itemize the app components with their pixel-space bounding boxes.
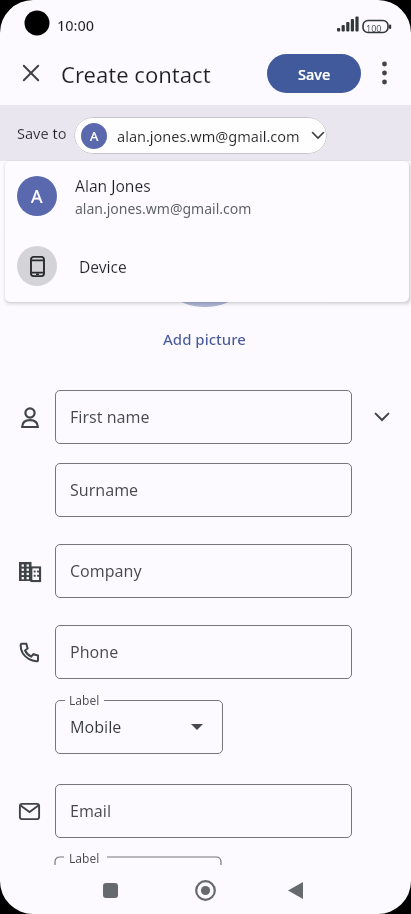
- staticText: 100: [366, 22, 382, 34]
- button[interactable]: First name: [55, 390, 352, 444]
- button[interactable]: Mobile: [55, 700, 223, 754]
- button[interactable]: Add picture: [163, 329, 246, 349]
- button[interactable]: Email: [55, 784, 352, 838]
- button[interactable]: Phone: [55, 625, 352, 679]
- button[interactable]: [13, 55, 49, 91]
- staticText: Alan Jones: [75, 175, 151, 196]
- staticText: Email: [70, 800, 112, 822]
- button[interactable]: [92, 872, 128, 908]
- staticText: A: [31, 184, 43, 209]
- staticText: Label: [69, 692, 100, 708]
- button[interactable]: [277, 872, 313, 908]
- staticText: Label: [69, 850, 100, 866]
- staticText: alan.jones.wm@gmail.com: [75, 199, 252, 218]
- button[interactable]: [366, 55, 402, 91]
- staticText: Surname: [70, 479, 139, 501]
- button[interactable]: Save: [267, 54, 361, 93]
- staticText: A: [90, 127, 99, 145]
- staticText: Mobile: [70, 716, 122, 738]
- staticText: Company: [70, 560, 142, 582]
- staticText: Save: [298, 64, 331, 84]
- staticText: First name: [70, 406, 150, 428]
- staticText: Save to: [17, 123, 67, 143]
- button[interactable]: [364, 399, 400, 435]
- staticText: Create contact: [61, 59, 211, 89]
- button[interactable]: [187, 872, 223, 908]
- staticText: Phone: [70, 641, 119, 663]
- button[interactable]: Surname: [55, 463, 352, 517]
- staticText: Device: [79, 256, 127, 277]
- button[interactable]: Company: [55, 544, 352, 598]
- staticText: alan.jones.wm@gmail.com: [117, 126, 300, 146]
- button[interactable]: A: [5, 161, 409, 231]
- button[interactable]: A: [74, 117, 327, 154]
- button[interactable]: Device: [5, 231, 409, 301]
- staticText: 10:00: [57, 15, 95, 35]
